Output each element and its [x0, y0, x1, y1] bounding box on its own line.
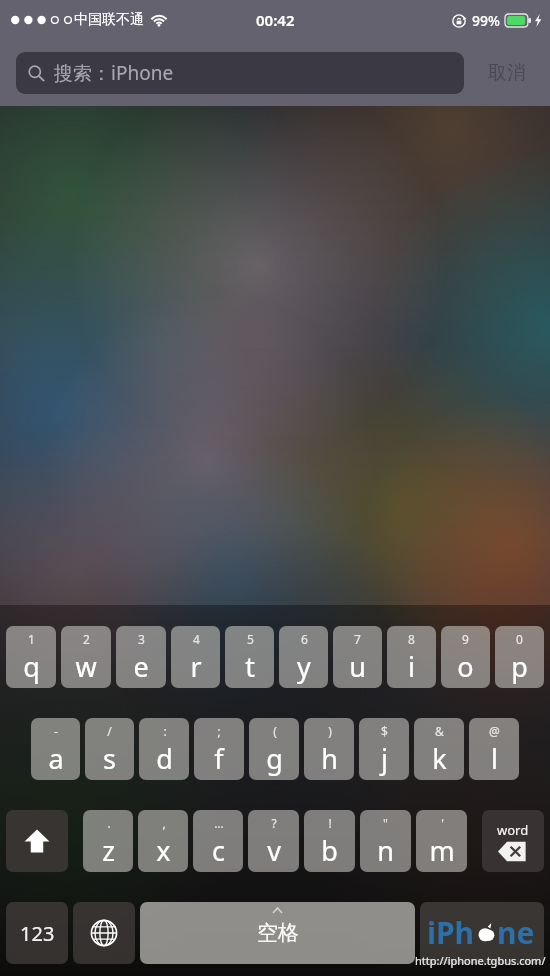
button[interactable]: )	[304, 718, 354, 780]
button[interactable]: @	[469, 718, 519, 780]
button[interactable]: Switch keyboard	[73, 902, 135, 964]
button[interactable]: ?	[248, 810, 299, 872]
staticText: k	[432, 740, 447, 777]
button[interactable]: 3	[116, 626, 166, 688]
button[interactable]: "	[360, 810, 411, 872]
staticText: s	[103, 740, 116, 777]
staticText: g	[266, 740, 283, 777]
staticText: j	[381, 740, 388, 777]
staticText: &	[435, 723, 444, 739]
staticText: w	[75, 648, 97, 685]
staticText: 中国联不通	[74, 11, 144, 29]
staticText: iPh	[427, 912, 475, 953]
button[interactable]: …	[193, 810, 243, 872]
staticText: h	[321, 740, 338, 777]
staticText: u	[349, 648, 366, 685]
staticText: .	[107, 815, 111, 831]
staticText: "	[383, 815, 388, 831]
button[interactable]: 9	[441, 626, 490, 688]
button[interactable]: 0	[495, 626, 544, 688]
button[interactable]: !	[304, 810, 355, 872]
button[interactable]: 取消	[464, 40, 550, 106]
staticText: '	[441, 815, 444, 831]
staticText: o	[457, 648, 474, 685]
button[interactable]: :	[139, 718, 189, 780]
staticText: 取消	[488, 61, 526, 85]
staticText: m	[429, 832, 455, 869]
staticText: r	[190, 648, 202, 685]
staticText: 5	[247, 631, 254, 647]
staticText: …	[214, 815, 224, 831]
button[interactable]: ,	[138, 810, 188, 872]
staticText: b	[321, 832, 338, 869]
staticText: c	[212, 832, 225, 869]
button[interactable]: 空格	[140, 902, 415, 964]
staticText: 7	[354, 631, 361, 647]
staticText: ?	[271, 815, 277, 831]
button[interactable]: Shift	[6, 810, 68, 872]
staticText: 0	[516, 631, 523, 647]
button[interactable]: /	[85, 718, 134, 780]
staticText: !	[328, 815, 332, 831]
button[interactable]: 4	[171, 626, 220, 688]
button[interactable]: &	[414, 718, 464, 780]
staticText: :	[163, 723, 167, 739]
staticText: $	[381, 723, 388, 739]
staticText: 00:42	[256, 10, 295, 30]
staticText: )	[328, 723, 332, 739]
staticText: y	[297, 648, 311, 685]
button[interactable]: (	[249, 718, 299, 780]
staticText: a	[48, 740, 64, 777]
staticText: f	[214, 740, 224, 777]
staticText: p	[511, 648, 528, 685]
staticText: /	[107, 723, 112, 739]
staticText: 123	[20, 920, 55, 947]
staticText: ne	[497, 912, 535, 953]
staticText: 空格	[257, 920, 299, 946]
staticText: (	[273, 723, 277, 739]
staticText: @	[489, 723, 500, 739]
button[interactable]: 1	[6, 626, 56, 688]
staticText: -	[54, 723, 58, 739]
staticText: n	[377, 832, 394, 869]
staticText: l	[491, 740, 498, 777]
staticText: e	[133, 648, 149, 685]
staticText: word	[497, 821, 529, 839]
staticText: x	[156, 832, 171, 869]
button[interactable]: 7	[333, 626, 382, 688]
staticText: 9	[462, 631, 469, 647]
staticText: v	[267, 832, 281, 869]
button[interactable]: Return	[420, 902, 544, 964]
staticText: http://iphone.tgbus.com/	[415, 953, 546, 968]
button[interactable]: Delete	[482, 810, 544, 872]
button[interactable]: ;	[194, 718, 244, 780]
staticText: ;	[217, 723, 221, 739]
button[interactable]: '	[416, 810, 467, 872]
staticText: 4	[193, 631, 200, 647]
staticText: 3	[138, 631, 145, 647]
button[interactable]: 6	[279, 626, 328, 688]
staticText: 99%	[472, 11, 500, 30]
staticText: d	[156, 740, 173, 777]
button[interactable]: -	[31, 718, 80, 780]
button[interactable]: 123	[6, 902, 68, 964]
button[interactable]: 8	[387, 626, 436, 688]
staticText: 6	[301, 631, 308, 647]
staticText: z	[102, 832, 115, 869]
staticText: 8	[408, 631, 415, 647]
button[interactable]: .	[83, 810, 133, 872]
staticText: i	[408, 648, 415, 685]
button[interactable]: 搜索：iPhone	[16, 52, 464, 94]
staticText: 搜索：iPhone	[54, 60, 174, 86]
staticText: q	[23, 648, 40, 685]
button[interactable]: 2	[61, 626, 111, 688]
staticText: ,	[162, 815, 166, 831]
staticText: 2	[83, 631, 90, 647]
staticText: 1	[28, 631, 35, 647]
staticText: t	[245, 648, 255, 685]
button[interactable]: $	[359, 718, 409, 780]
button[interactable]: 5	[225, 626, 274, 688]
